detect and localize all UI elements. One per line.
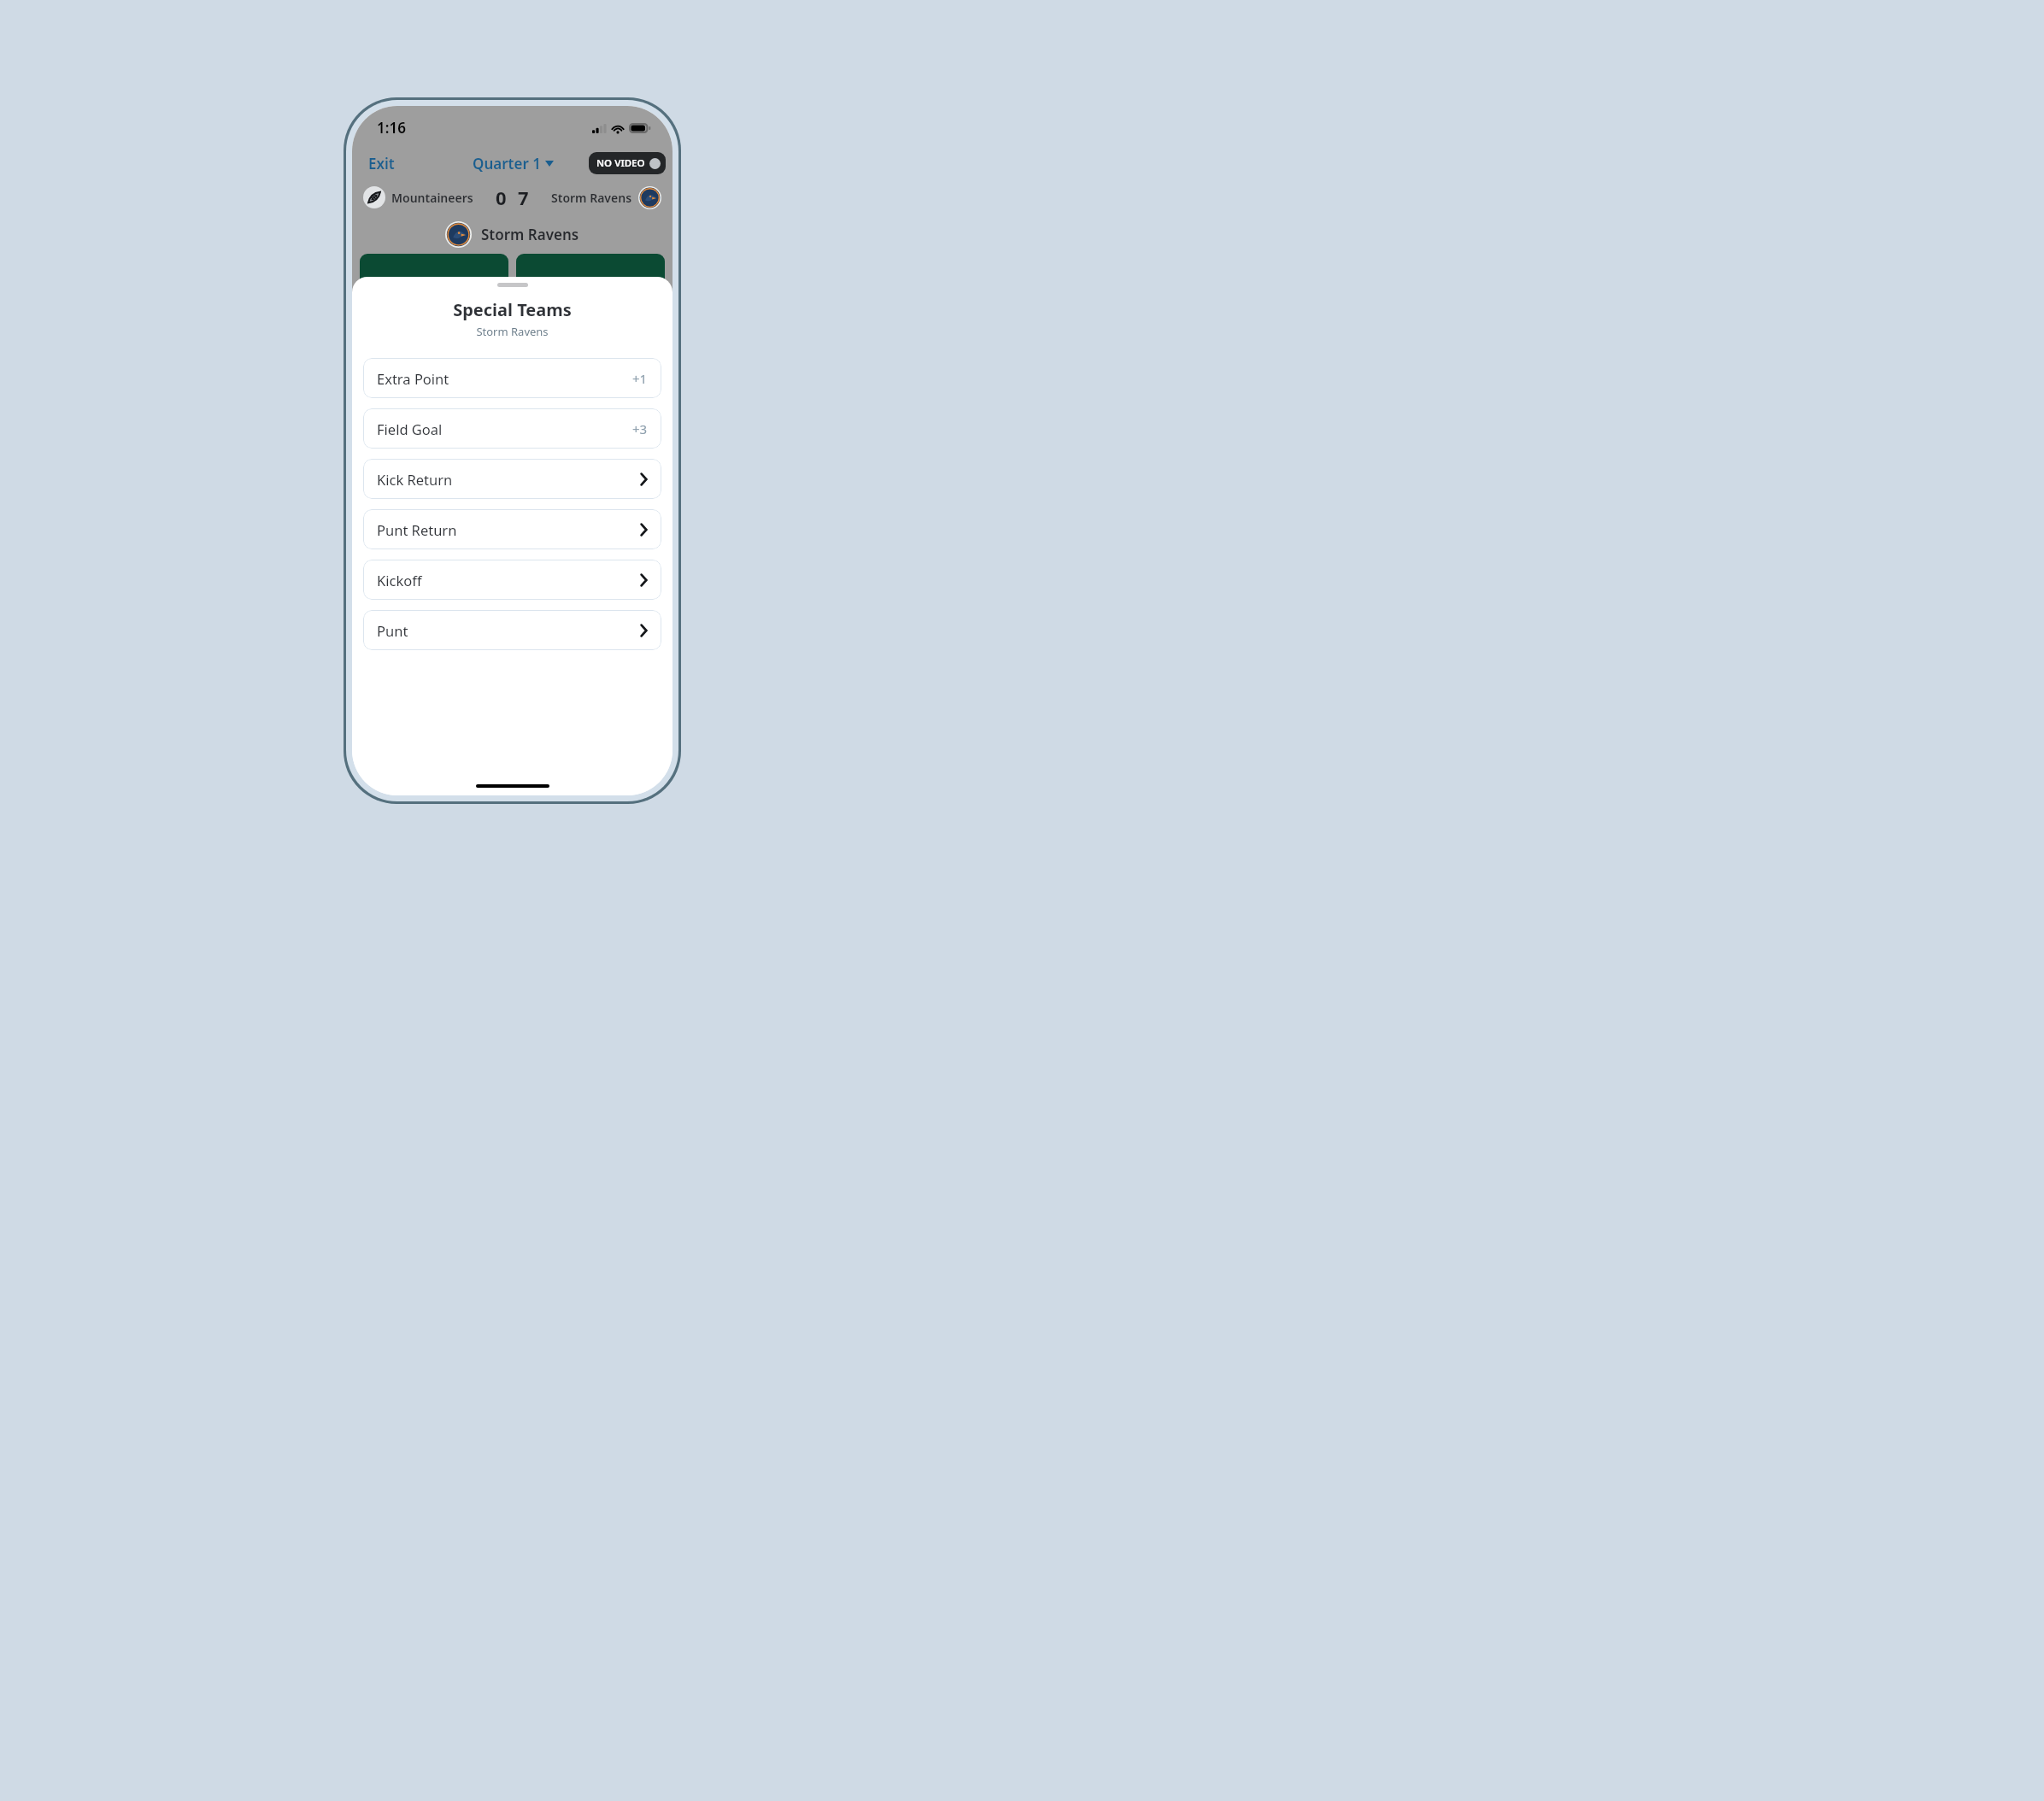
staticText: Field Goal bbox=[377, 419, 443, 438]
other: Open bbox=[640, 523, 648, 537]
staticText: Punt Return bbox=[377, 520, 457, 539]
button[interactable]: Field Goal bbox=[363, 408, 661, 449]
button[interactable] bbox=[360, 254, 508, 279]
other: Open bbox=[640, 624, 648, 637]
button[interactable]: Punt bbox=[363, 610, 661, 650]
button[interactable]: Quarter 1 bbox=[466, 150, 561, 177]
other: Open bbox=[640, 472, 648, 486]
staticText: Quarter 1 bbox=[473, 154, 541, 173]
staticText: Kick Return bbox=[377, 470, 453, 489]
staticText: Kickoff bbox=[377, 571, 422, 590]
staticText: Extra Point bbox=[377, 369, 449, 388]
staticText: Punt bbox=[377, 621, 408, 640]
staticText: Storm Ravens bbox=[551, 190, 632, 206]
staticText: Storm Ravens bbox=[481, 225, 579, 244]
staticText: 1:16 bbox=[377, 118, 406, 138]
button[interactable]: Extra Point bbox=[363, 358, 661, 398]
button[interactable]: Punt Return bbox=[363, 509, 661, 549]
staticText: NO VIDEO bbox=[596, 156, 645, 170]
button[interactable] bbox=[516, 254, 665, 279]
staticText: Special Teams bbox=[352, 298, 673, 321]
other: Open bbox=[640, 573, 648, 587]
button[interactable]: NO VIDEO bbox=[589, 152, 666, 174]
button[interactable]: Exit bbox=[352, 150, 396, 177]
staticText: Exit bbox=[368, 154, 395, 173]
button[interactable]: Kick Return bbox=[363, 459, 661, 499]
staticText: +1 bbox=[632, 370, 648, 387]
staticText: +3 bbox=[632, 420, 648, 437]
staticText: 7 bbox=[518, 185, 529, 210]
button[interactable]: Kickoff bbox=[363, 560, 661, 600]
staticText: Mountaineers bbox=[391, 190, 473, 206]
staticText: 0 bbox=[496, 185, 507, 210]
staticText: Storm Ravens bbox=[352, 324, 673, 339]
